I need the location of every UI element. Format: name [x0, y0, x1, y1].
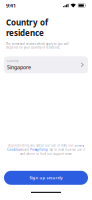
- staticText: Terms &: [74, 144, 84, 147]
- staticText: . Tap to read how we use it: [47, 148, 85, 151]
- staticText: By proceeding you accept our use of data…: [8, 144, 74, 147]
- button[interactable]: Sign up securely: [4, 171, 88, 185]
- staticText: Country of residence: [6, 17, 48, 38]
- button[interactable]: Conditions: [7, 148, 23, 151]
- staticText: and: [23, 148, 30, 151]
- staticText: Privacy Policy: [30, 148, 47, 151]
- button[interactable]: Terms &: [74, 144, 84, 147]
- staticText: Sign up securely: [29, 175, 62, 180]
- staticText: The terms and services which apply to yo…: [6, 42, 69, 49]
- staticText: 9:41: [6, 2, 16, 9]
- staticText: Singapore: [7, 64, 31, 71]
- button[interactable]: Privacy Policy: [30, 148, 47, 151]
- button[interactable]: Country: [4, 56, 88, 73]
- staticText: Country: [7, 59, 18, 62]
- staticText: and where to find our support team.: [20, 152, 72, 156]
- staticText: Conditions: [7, 148, 23, 151]
